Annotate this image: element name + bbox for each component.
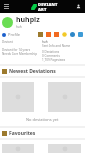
staticText: Newest Deviations xyxy=(9,68,56,75)
staticText: huh xyxy=(42,40,48,44)
staticText: Sent Info and Name xyxy=(42,44,71,48)
staticText: 1,709 Pageviews xyxy=(42,58,66,62)
staticText: 0 Comments xyxy=(42,54,60,58)
staticText: 0 Deviations xyxy=(42,50,60,54)
staticText: huhplz xyxy=(16,15,40,25)
button[interactable]: Favourites xyxy=(0,128,85,138)
staticText: huh xyxy=(16,25,22,29)
button[interactable]: Account xyxy=(74,2,83,11)
staticText: Profile xyxy=(8,32,21,37)
staticText: Deviant xyxy=(2,40,13,44)
staticText: No deviations yet xyxy=(26,117,59,122)
button[interactable]: Menu xyxy=(2,2,11,11)
staticText: Favourites xyxy=(9,130,36,137)
button[interactable]: Profile xyxy=(2,32,21,37)
staticText: Needs Core Membership xyxy=(2,52,37,56)
staticText: DEVIANT xyxy=(38,2,58,7)
staticText: Deviant for 14 years xyxy=(2,48,31,52)
button[interactable]: Newest Deviations xyxy=(0,66,85,76)
staticText: ART xyxy=(38,7,47,12)
